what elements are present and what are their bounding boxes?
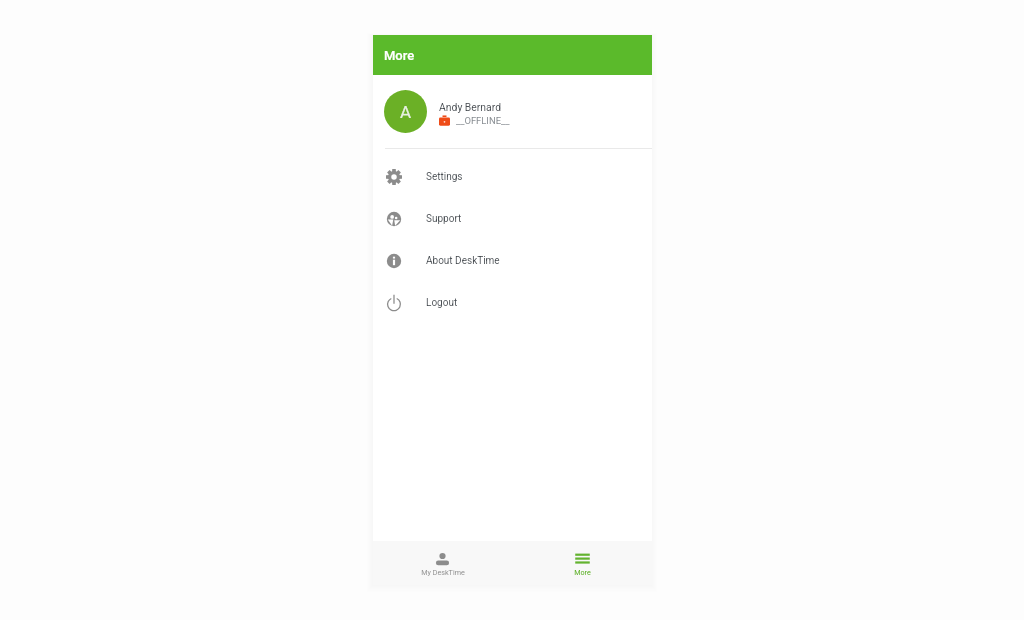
other: About DeskTime bbox=[386, 253, 402, 269]
staticText: Andy Bernard bbox=[439, 101, 502, 113]
button[interactable]: Support bbox=[373, 198, 652, 240]
staticText: Logout bbox=[426, 297, 458, 309]
staticText: About DeskTime bbox=[426, 255, 500, 267]
staticText: My DeskTime bbox=[421, 568, 465, 576]
button[interactable]: About DeskTime bbox=[373, 240, 652, 282]
staticText: A bbox=[400, 102, 412, 122]
staticText: More bbox=[574, 568, 591, 576]
staticText: Support bbox=[426, 213, 462, 225]
staticText: __OFFLINE__ bbox=[456, 115, 510, 126]
button[interactable]: My DeskTime bbox=[373, 541, 512, 585]
other: Settings bbox=[386, 169, 402, 185]
button[interactable]: More bbox=[512, 541, 652, 585]
button[interactable]: A bbox=[373, 75, 652, 148]
button[interactable]: Settings bbox=[373, 156, 652, 198]
staticText: More bbox=[384, 48, 415, 63]
staticText: Settings bbox=[426, 171, 463, 183]
other: Logout bbox=[386, 295, 402, 311]
button[interactable]: Logout bbox=[373, 282, 652, 324]
other: Support bbox=[386, 211, 402, 227]
